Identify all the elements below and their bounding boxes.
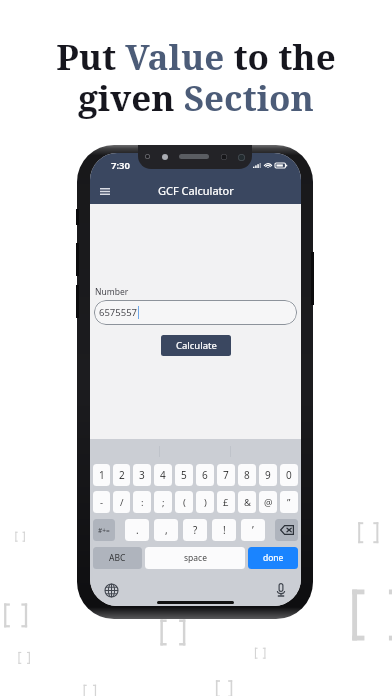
staticText: ( — [183, 496, 186, 509]
button[interactable]: & — [238, 491, 256, 513]
button[interactable]: 4 — [154, 464, 172, 486]
button[interactable]: ( — [175, 491, 193, 513]
staticText: & — [244, 496, 251, 509]
staticText: ABC — [109, 552, 126, 564]
button[interactable]: 6 — [196, 464, 214, 486]
button[interactable]: Open navigation menu — [94, 180, 116, 202]
staticText: 1 — [99, 468, 105, 482]
button[interactable]: £ — [217, 491, 235, 513]
staticText: 0 — [286, 468, 292, 482]
staticText: 9 — [265, 468, 271, 482]
staticText: Calculate — [176, 339, 217, 352]
staticText: 3 — [139, 468, 145, 482]
staticText: done — [263, 552, 284, 564]
button[interactable]: 2 — [113, 464, 130, 486]
button[interactable]: / — [113, 491, 130, 513]
staticText: ) — [204, 496, 207, 509]
staticText: £ — [223, 496, 229, 509]
staticText: @ — [264, 496, 273, 509]
staticText: . — [136, 523, 139, 537]
button[interactable]: 7 — [217, 464, 235, 486]
staticText: #+= — [98, 526, 110, 535]
button[interactable]: 3 — [133, 464, 151, 486]
staticText: 2 — [119, 468, 125, 482]
staticText: GCF Calculator — [158, 183, 234, 198]
staticText: 6 — [202, 468, 208, 482]
button[interactable]: , — [154, 519, 178, 541]
button[interactable]: . — [125, 519, 149, 541]
staticText: ! — [223, 523, 226, 537]
button[interactable]: ; — [154, 491, 172, 513]
staticText: ? — [193, 523, 198, 537]
button[interactable]: 9 — [259, 464, 277, 486]
button[interactable]: Calculate — [161, 335, 231, 356]
button[interactable]: ’ — [241, 519, 265, 541]
button[interactable]: ! — [212, 519, 236, 541]
staticText: 5 — [181, 468, 187, 482]
staticText: 7:30 — [111, 159, 130, 172]
button[interactable]: ) — [196, 491, 214, 513]
staticText: : — [141, 496, 144, 509]
staticText: space — [184, 552, 207, 564]
staticText: 4 — [160, 468, 166, 482]
button[interactable]: 8 — [238, 464, 256, 486]
button[interactable]: 1 — [93, 464, 110, 486]
button[interactable]: Backspace — [275, 519, 298, 541]
button[interactable]: ABC — [93, 547, 142, 569]
button[interactable]: space — [145, 547, 245, 569]
staticText: ” — [287, 496, 291, 509]
button[interactable]: ” — [280, 491, 298, 513]
staticText: ; — [162, 496, 165, 509]
staticText: Put Value to the given Section — [56, 33, 336, 121]
staticText: 8 — [244, 468, 250, 482]
button[interactable]: ? — [183, 519, 207, 541]
staticText: , — [165, 523, 168, 537]
button[interactable]: @ — [259, 491, 277, 513]
button[interactable]: 6575557 — [94, 300, 297, 325]
staticText: - — [100, 496, 104, 509]
staticText: / — [120, 496, 124, 509]
button[interactable]: Dictation — [272, 581, 290, 599]
button[interactable]: 0 — [280, 464, 298, 486]
button[interactable]: #+= — [93, 519, 115, 541]
button[interactable]: done — [248, 547, 298, 569]
button[interactable]: Switch keyboard — [102, 581, 120, 599]
staticText: 6575557 — [99, 306, 138, 319]
button[interactable]: : — [133, 491, 151, 513]
staticText: 7 — [223, 468, 229, 482]
staticText: ’ — [252, 523, 254, 537]
staticText: Number — [95, 286, 129, 298]
button[interactable]: 5 — [175, 464, 193, 486]
button[interactable]: - — [93, 491, 110, 513]
